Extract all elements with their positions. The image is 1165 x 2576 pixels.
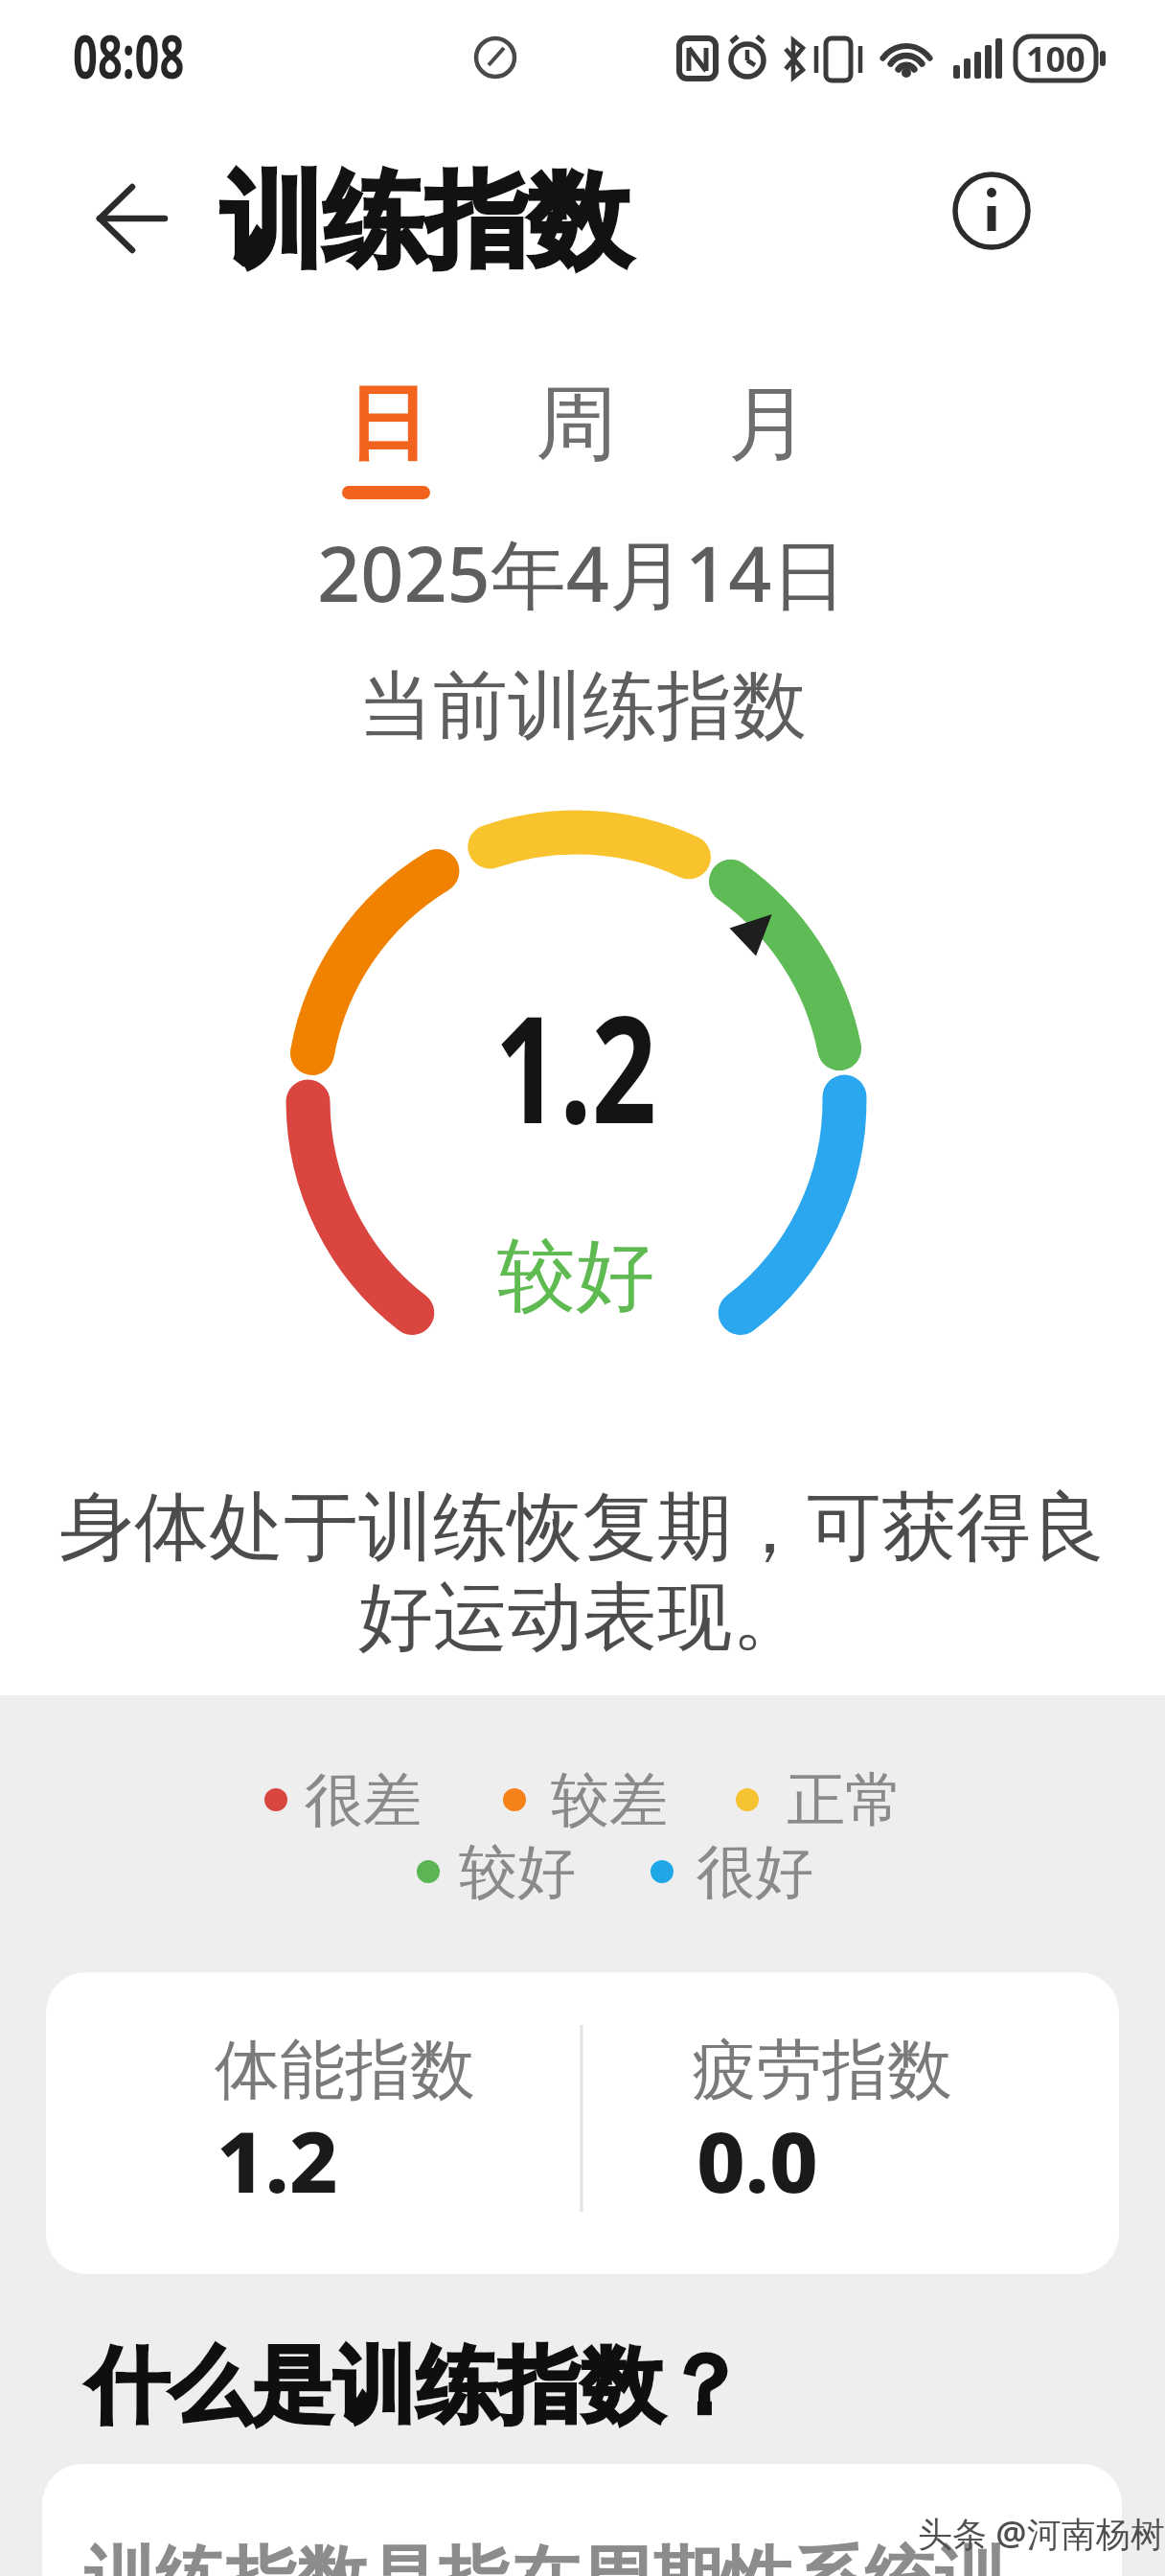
staticText: 训练指数	[220, 157, 630, 287]
staticText: 身体处于训练恢复期，可获得良 好运动表现。	[59, 1481, 1106, 1665]
staticText: 训练指数是指在周期性系统训	[84, 2536, 1006, 2576]
staticText: 很差	[305, 1763, 422, 1837]
staticText: 2025年4月14日	[317, 521, 848, 625]
button[interactable]	[46, 1972, 1119, 2274]
button[interactable]: 周	[480, 356, 672, 491]
staticText: 当前训练指数	[358, 659, 807, 753]
staticText: 疲劳指数	[692, 2030, 952, 2112]
button[interactable]	[42, 2464, 1122, 2576]
button[interactable]: 月	[673, 356, 864, 491]
staticText: 头条 @河南杨树	[918, 2510, 1165, 2557]
staticText: 体能指数	[215, 2030, 475, 2112]
staticText: 什么是训练指数？	[86, 2334, 745, 2438]
staticText: 日	[347, 373, 428, 475]
staticText: 较好	[459, 1835, 576, 1909]
staticText: 周	[536, 373, 617, 475]
staticText: 0.0	[697, 2103, 818, 2218]
staticText: 较差	[551, 1763, 668, 1837]
staticText: 1.2	[495, 965, 657, 1166]
button[interactable]: 日	[291, 356, 483, 491]
button[interactable]	[75, 165, 186, 270]
staticText: 1.2	[217, 2103, 338, 2218]
staticText: 很好	[697, 1835, 813, 1909]
staticText: 100	[1026, 35, 1085, 82]
button[interactable]	[944, 163, 1039, 259]
staticText: 月	[728, 373, 810, 475]
staticText: 08:08	[73, 15, 185, 96]
staticText: 较好	[497, 1227, 654, 1325]
staticText: 正常	[787, 1763, 903, 1837]
